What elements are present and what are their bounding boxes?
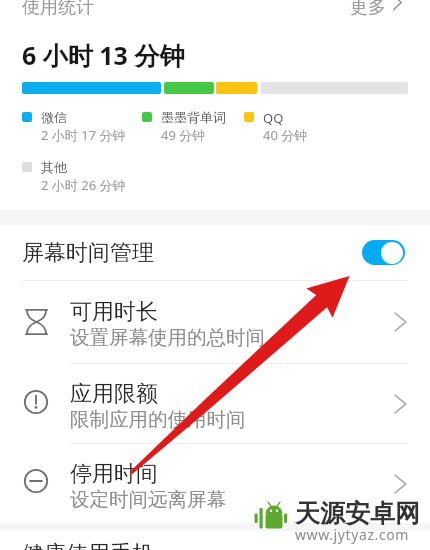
staticText: 2 小时 26 分钟	[41, 176, 126, 194]
staticText: 健康使用手机	[22, 540, 154, 550]
button[interactable]: 应用限额	[0, 363, 430, 444]
staticText: 设置屏幕使用的总时间	[70, 325, 265, 350]
staticText: 可用时长	[70, 298, 158, 326]
staticText: 天源安卓网	[295, 498, 420, 529]
staticText: 40 分钟	[263, 126, 308, 144]
button[interactable]: 停用时间	[0, 443, 430, 524]
staticText: 49 分钟	[161, 126, 206, 144]
staticText: www.jytyaz.com	[295, 525, 410, 544]
staticText: 微信	[41, 109, 67, 125]
staticText: 屏幕时间管理	[22, 239, 154, 267]
button[interactable]: 使用统计	[22, 0, 94, 19]
staticText: 设定时间远离屏幕	[70, 487, 226, 512]
staticText: 6 小时 13 分钟	[22, 38, 185, 72]
staticText: 应用限额	[70, 380, 158, 408]
staticText: 停用时间	[70, 460, 158, 488]
staticText: 限制应用的使用时间	[70, 407, 246, 432]
button[interactable]: 屏幕时间管理	[0, 225, 430, 280]
staticText: 使用统计	[22, 0, 94, 19]
staticText: QQ	[263, 109, 284, 127]
button[interactable]: 屏幕时间管理 开关	[362, 240, 405, 265]
button[interactable]: 更多	[340, 0, 420, 22]
staticText: 其他	[41, 159, 67, 175]
staticText: 更多	[350, 0, 386, 19]
staticText: 墨墨背单词	[161, 109, 226, 125]
staticText: 2 小时 17 分钟	[41, 126, 126, 144]
button[interactable]: 可用时长	[0, 281, 430, 362]
